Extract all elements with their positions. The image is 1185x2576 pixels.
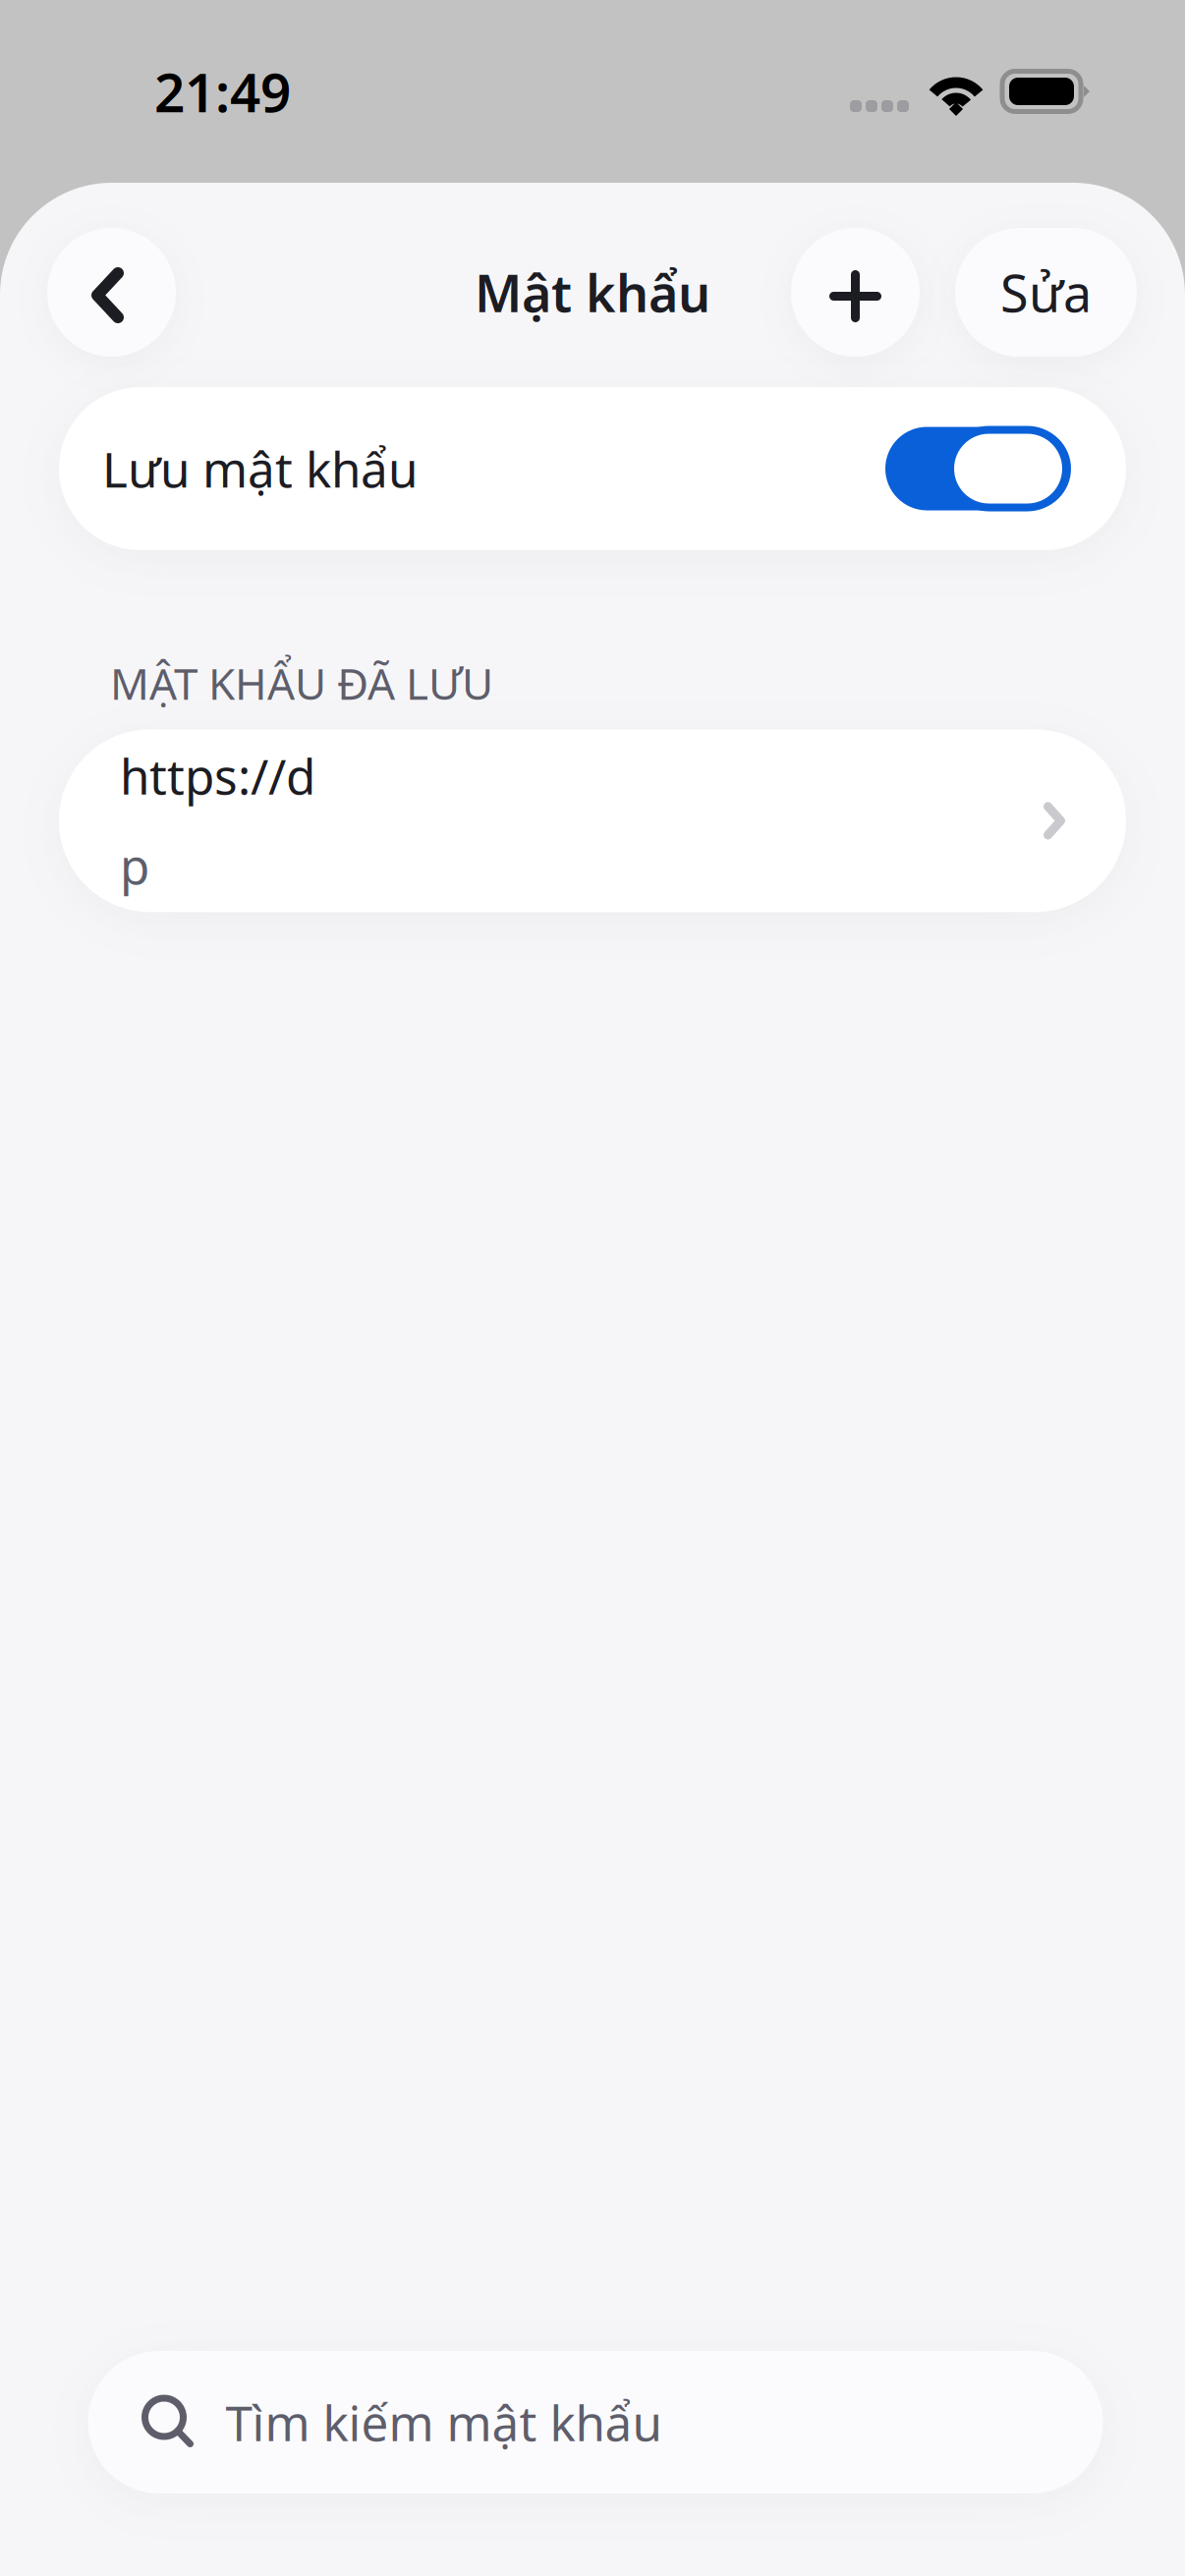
- button[interactable]: Tìm kiếm mật khẩu: [88, 2351, 1103, 2493]
- staticText: p: [120, 834, 149, 898]
- staticText: Lưu mật khẩu: [102, 436, 418, 501]
- button[interactable]: Thêm mật khẩu: [790, 228, 921, 357]
- staticText: MẬT KHẨU ĐÃ LƯU: [110, 654, 493, 712]
- button[interactable]: Lưu mật khẩu: [59, 387, 1126, 550]
- button[interactable]: Quay lại: [47, 228, 176, 357]
- button[interactable]: Sửa: [955, 228, 1137, 357]
- staticText: Tìm kiếm mật khẩu: [226, 2390, 662, 2454]
- staticText: Mật khẩu: [475, 258, 710, 326]
- staticText: 21:49: [154, 56, 291, 127]
- staticText: https://d: [120, 744, 315, 808]
- staticText: Sửa: [1000, 258, 1092, 326]
- button[interactable]: https://d: [59, 729, 1126, 912]
